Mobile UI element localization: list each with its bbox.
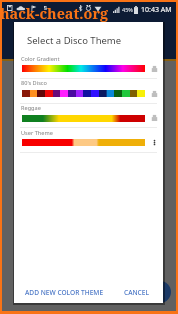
staticText: Select a Disco Theme bbox=[27, 34, 122, 47]
other: Locked bbox=[148, 62, 161, 75]
staticText: hack-cheat.org bbox=[0, 4, 108, 24]
other: Locked bbox=[148, 111, 161, 124]
staticText: CANCEL bbox=[124, 288, 150, 297]
staticText: Reggae bbox=[21, 104, 41, 112]
button[interactable]: CANCEL bbox=[118, 284, 156, 301]
button[interactable] bbox=[19, 78, 158, 103]
button[interactable] bbox=[19, 53, 158, 78]
staticText: 80's Disco bbox=[21, 79, 47, 87]
staticText: ADD NEW COLOR THEME bbox=[25, 288, 104, 297]
button[interactable]: More options bbox=[148, 136, 161, 149]
button[interactable]: Add theme bbox=[149, 281, 171, 303]
staticText: 45% bbox=[122, 6, 133, 13]
button[interactable] bbox=[19, 127, 158, 152]
staticText: User Theme bbox=[21, 129, 53, 137]
button[interactable] bbox=[19, 102, 158, 127]
staticText: Color Gradient bbox=[21, 55, 60, 63]
staticText: 10:43 AM bbox=[141, 5, 172, 15]
button[interactable]: ADD NEW COLOR THEME bbox=[19, 284, 110, 301]
other: Locked bbox=[148, 87, 161, 100]
